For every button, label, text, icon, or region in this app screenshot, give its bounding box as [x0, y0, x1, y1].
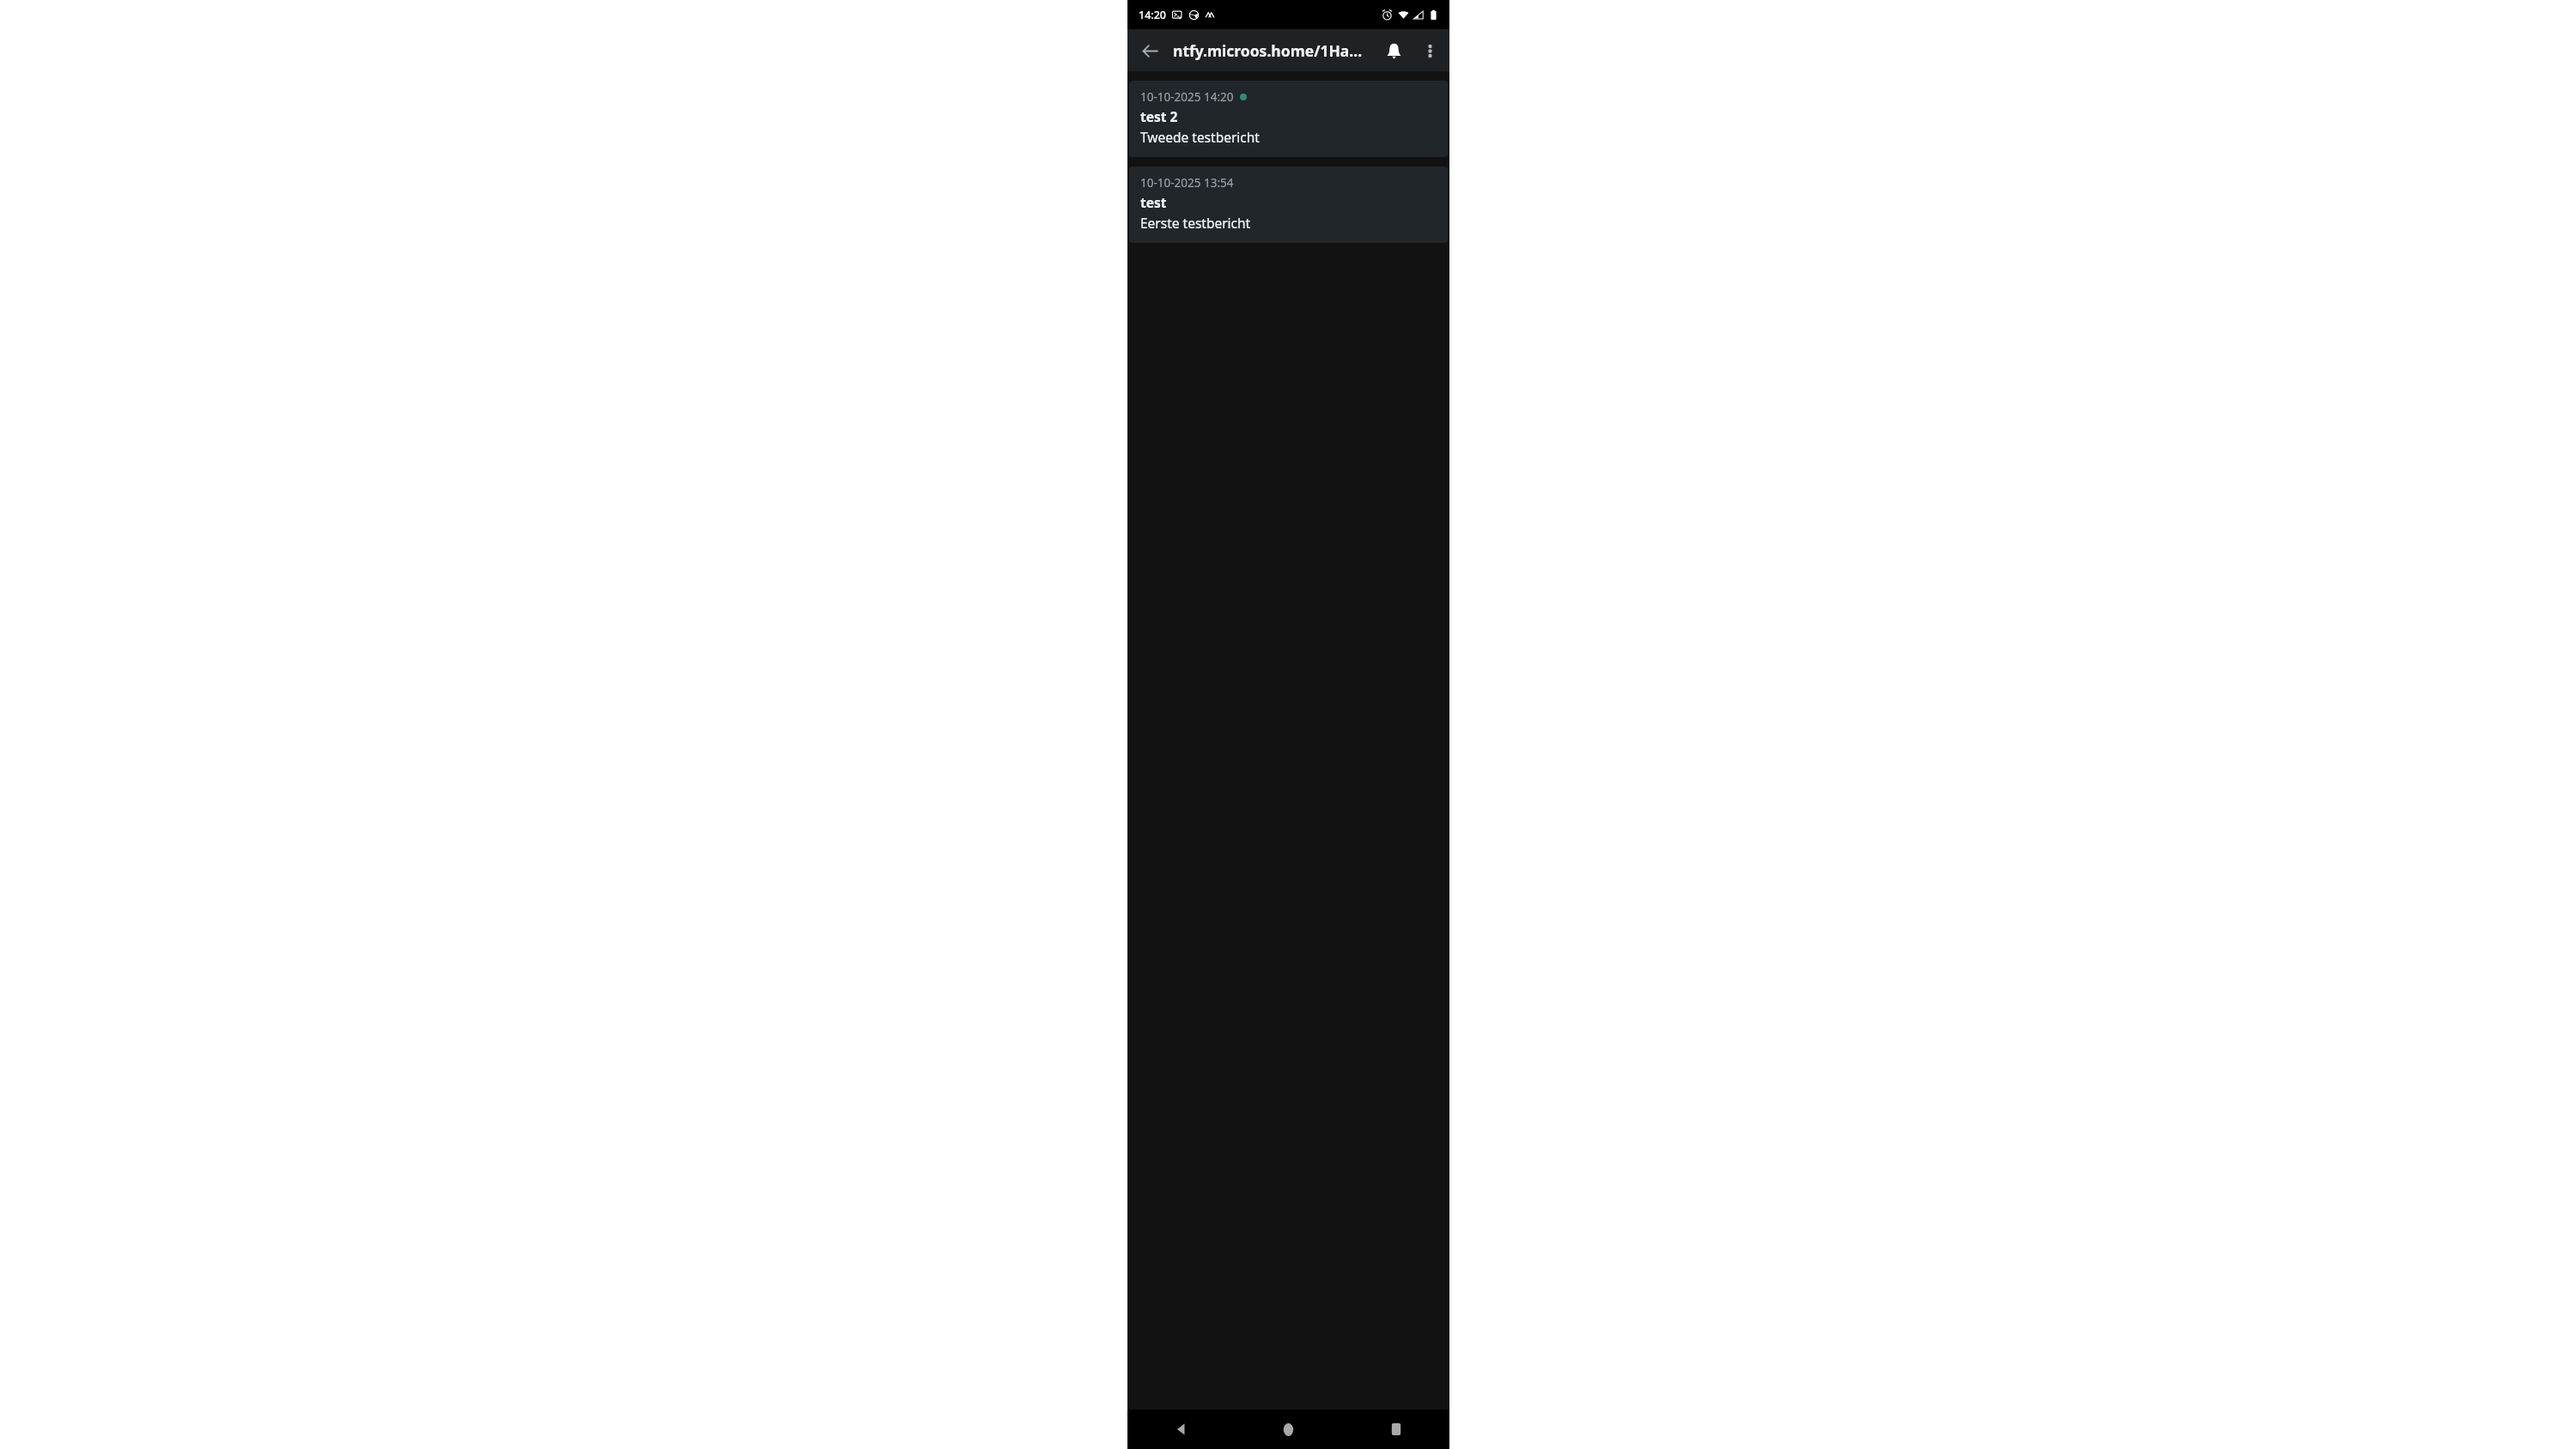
staticText: Tweede testbericht — [1140, 128, 1260, 146]
button[interactable]: Recent apps — [1342, 1410, 1449, 1449]
staticText: test — [1140, 193, 1167, 211]
button[interactable]: Back — [1131, 32, 1169, 70]
staticText: 10-10-2025 14:20 — [1140, 89, 1234, 105]
staticText: Eerste testbericht — [1140, 214, 1251, 232]
button[interactable]: 10-10-2025 13:54 — [1129, 167, 1448, 243]
button[interactable]: Home — [1235, 1410, 1342, 1449]
staticText: test 2 — [1140, 107, 1178, 125]
staticText: 10-10-2025 13:54 — [1140, 175, 1234, 191]
staticText: ntfy.microos.home/1Hau… — [1173, 40, 1371, 61]
button[interactable]: 10-10-2025 14:20 — [1129, 81, 1448, 157]
button[interactable]: Notifications — [1375, 32, 1413, 70]
staticText: 14:20 — [1139, 8, 1167, 22]
button[interactable]: Back — [1127, 1410, 1235, 1449]
button[interactable]: More options — [1413, 33, 1447, 68]
